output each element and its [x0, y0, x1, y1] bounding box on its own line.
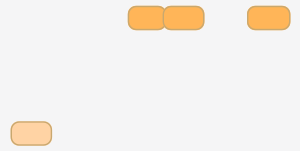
- button[interactable]: Chip four: [11, 121, 52, 146]
- button[interactable]: Chip three: [247, 6, 290, 30]
- button[interactable]: Chip one: [128, 6, 166, 30]
- button[interactable]: Chip two: [163, 6, 204, 30]
